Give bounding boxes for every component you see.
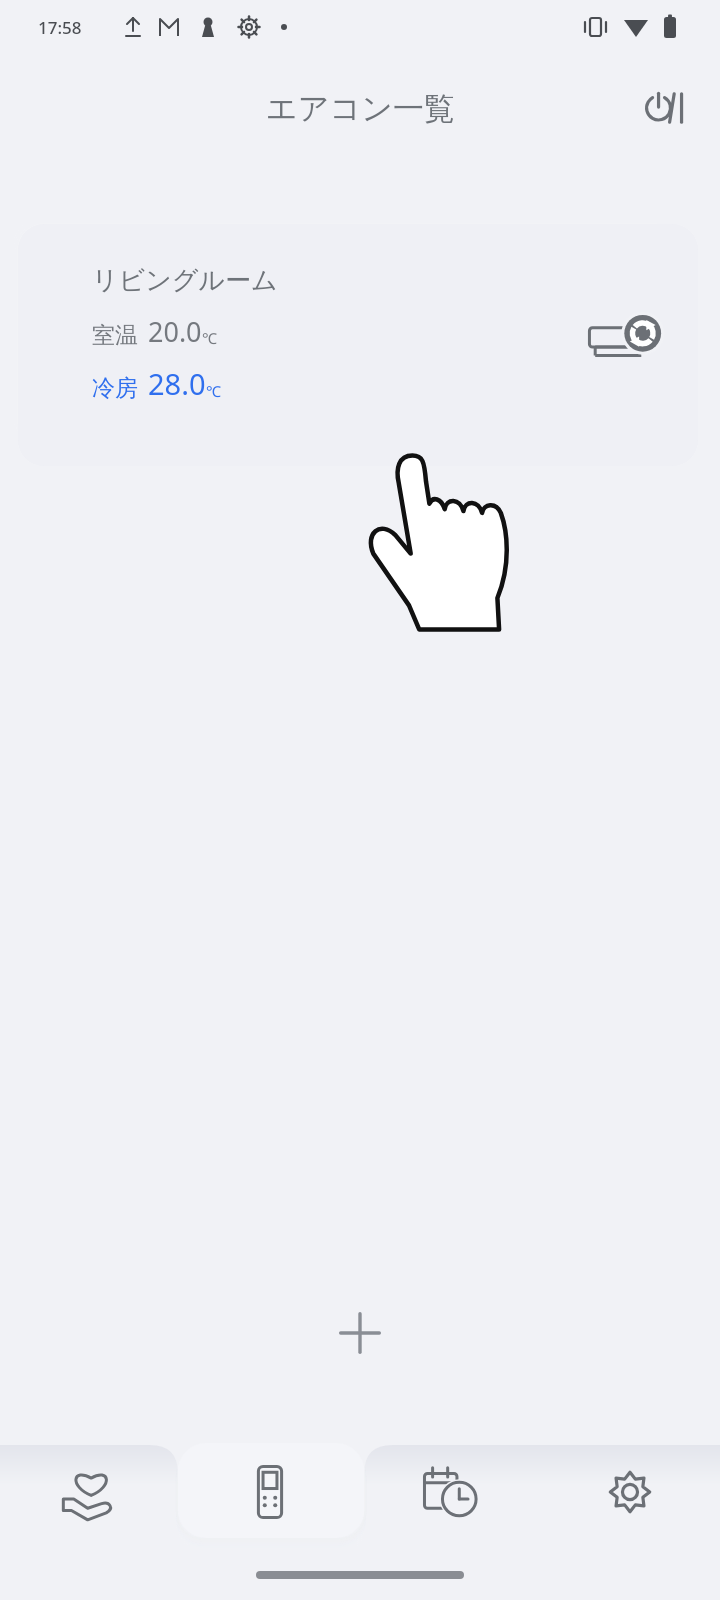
button[interactable]: リモコン [180,1442,360,1542]
staticText: ℃ [206,381,221,401]
button[interactable]: 追加 [321,1294,399,1372]
button[interactable]: 設定 [540,1442,720,1542]
staticText: 28.0 [148,364,206,403]
button[interactable]: 電源 [632,75,698,141]
button[interactable]: リビングルーム [18,224,698,466]
staticText: エアコン一覧 [266,89,455,128]
staticText: 冷房 [92,374,138,403]
staticText: 17:58 [38,16,82,39]
button[interactable]: タイマー [360,1442,540,1542]
staticText: 室温 [92,321,138,350]
staticText: リビングルーム [92,264,278,297]
button[interactable]: お気に入り [0,1442,180,1542]
staticText: ℃ [202,328,217,348]
staticText: 20.0 [148,313,202,350]
